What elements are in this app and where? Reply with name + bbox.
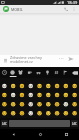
button[interactable]: Emoji bbox=[0, 87, 8, 96]
button[interactable]: Emoji bbox=[25, 96, 34, 105]
button[interactable]: Emoji bbox=[43, 87, 52, 96]
button[interactable]: Send bbox=[66, 54, 75, 63]
button[interactable]: bear bbox=[16, 67, 25, 78]
staticText: Zdravime vsechny mobilenet.cz bbox=[10, 55, 56, 64]
button[interactable]: Emoji bbox=[25, 105, 34, 114]
button[interactable]: Emoji bbox=[52, 87, 61, 96]
button[interactable]: Emoji bbox=[34, 87, 43, 96]
button[interactable]: bulb bbox=[43, 67, 52, 78]
button[interactable]: Emoji bbox=[43, 78, 52, 87]
button[interactable]: cup bbox=[25, 67, 34, 78]
button[interactable]: Emoji bbox=[52, 96, 61, 105]
button[interactable]: Emoji bbox=[16, 96, 25, 105]
button[interactable]: More options bbox=[70, 5, 78, 13]
button[interactable]: Emoji bbox=[0, 105, 8, 114]
button[interactable]: Emoji bbox=[61, 105, 70, 114]
button[interactable]: Emoji bbox=[25, 87, 34, 96]
button[interactable]: Back bbox=[0, 129, 27, 140]
button[interactable]: Emoji bbox=[61, 96, 70, 105]
button[interactable]: Emoji bbox=[34, 96, 43, 105]
button[interactable]: Emoji bbox=[8, 105, 16, 114]
button[interactable]: Emoji bbox=[8, 78, 16, 87]
button[interactable]: Emoji bbox=[70, 87, 79, 96]
button[interactable]: Emoji bbox=[61, 78, 70, 87]
button[interactable]: Emoji bbox=[43, 96, 52, 105]
button[interactable]: Emoji bbox=[0, 96, 8, 105]
staticText: ABC bbox=[2, 122, 7, 126]
button[interactable]: Emoji bbox=[70, 105, 79, 114]
button[interactable]: flag bbox=[61, 67, 70, 78]
button[interactable]: ABC bbox=[1, 120, 8, 127]
button[interactable]: clock bbox=[0, 67, 8, 78]
button[interactable]: Emoji bbox=[16, 105, 25, 114]
staticText: 18:39 bbox=[67, 0, 78, 5]
button[interactable]: Emoji bbox=[16, 87, 25, 96]
staticText: MOBIL bbox=[11, 7, 23, 12]
button[interactable]: Emoji bbox=[52, 78, 61, 87]
button[interactable]: smile bbox=[8, 67, 16, 78]
button[interactable]: Emoji bbox=[0, 78, 8, 87]
button[interactable]: Recents bbox=[53, 129, 79, 140]
button[interactable]: Call bbox=[62, 5, 70, 13]
button[interactable]: Emoji bbox=[70, 96, 79, 105]
button[interactable]: car bbox=[34, 67, 43, 78]
button[interactable]: Emoji bbox=[8, 87, 16, 96]
button[interactable]: Emoji bbox=[61, 87, 70, 96]
button[interactable]: Emoji bbox=[52, 105, 61, 114]
button[interactable]: Backspace bbox=[70, 67, 79, 78]
button[interactable]: ABC bbox=[71, 120, 78, 127]
button[interactable]: Emoji bbox=[34, 78, 43, 87]
button[interactable]: Emoji bbox=[25, 78, 34, 87]
button[interactable]: Emoji bbox=[34, 105, 43, 114]
button[interactable]: Attach bbox=[4, 59, 7, 62]
button[interactable]: Emoji bbox=[43, 105, 52, 114]
staticText: ABC bbox=[72, 122, 77, 126]
button[interactable]: Emoji bbox=[70, 78, 79, 87]
button[interactable]: Contact avatar bbox=[3, 6, 9, 12]
button[interactable]: hash bbox=[52, 67, 61, 78]
button[interactable]: Emoji bbox=[8, 96, 16, 105]
button[interactable]: Home bbox=[27, 129, 53, 140]
button[interactable]: Emoji bbox=[16, 78, 25, 87]
